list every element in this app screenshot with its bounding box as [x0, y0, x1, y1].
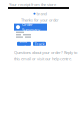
staticText: this email or visit our help centre.	[14, 56, 72, 61]
staticText: Track	[34, 41, 44, 46]
staticText: View order	[19, 38, 29, 49]
staticText: Your receipt from the store	[9, 2, 56, 7]
button[interactable]: Track	[33, 42, 46, 46]
button[interactable]: View order	[17, 42, 31, 46]
staticText: brand	[36, 11, 46, 16]
staticText: Thanks for your order	[21, 17, 59, 23]
staticText: Questions about your order? Reply to	[14, 50, 77, 55]
staticText: Order Summary	[22, 22, 40, 32]
